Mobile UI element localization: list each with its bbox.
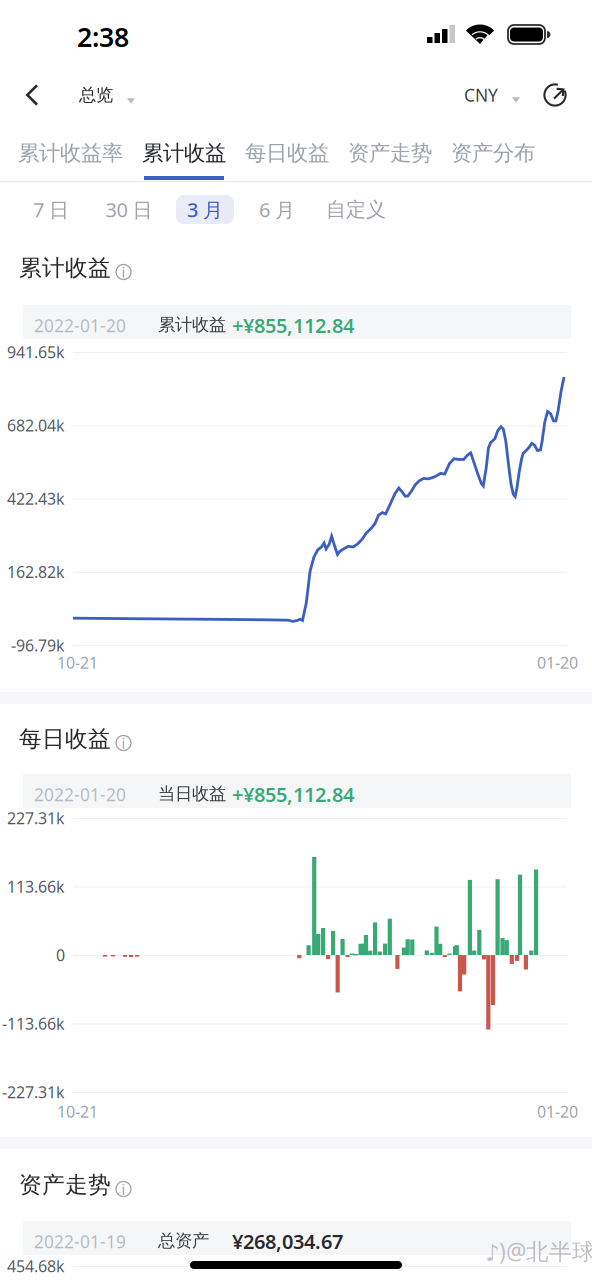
staticText: 资产分布 xyxy=(451,140,535,166)
staticText: 累计收益 xyxy=(158,314,226,335)
staticText: 2:38 xyxy=(77,19,129,54)
button[interactable]: 资产走势 xyxy=(350,123,430,181)
staticText: 每日收益 xyxy=(245,140,329,166)
button[interactable]: 资产分布 xyxy=(453,123,533,181)
button[interactable]: 每日收益 xyxy=(247,123,327,181)
staticText: -113.66k xyxy=(2,1013,65,1034)
staticText: i xyxy=(121,733,125,753)
staticText: ♪)@北半球 xyxy=(485,1236,592,1266)
staticText: 累计收益率 xyxy=(18,140,123,166)
staticText: ¥268,034.67 xyxy=(232,1228,343,1255)
staticText: 总资产 xyxy=(158,1230,209,1251)
staticText: 2022-01-20 xyxy=(34,314,126,337)
staticText: 资产走势 xyxy=(348,140,432,166)
button[interactable]: 30 日 xyxy=(95,195,163,224)
staticText: 10-21 xyxy=(57,1101,98,1122)
staticText: 30 日 xyxy=(105,196,152,223)
button[interactable]: 6 月 xyxy=(248,195,306,224)
staticText: 01-20 xyxy=(537,652,578,673)
staticText: 2022-01-19 xyxy=(34,1230,126,1253)
staticText: 资产走势 xyxy=(19,1171,111,1199)
button[interactable]: 累计收益率 xyxy=(20,123,121,181)
button[interactable]: 累计收益 xyxy=(144,123,224,181)
button[interactable]: 7 日 xyxy=(22,195,80,224)
button[interactable]: 总览 xyxy=(75,72,139,118)
staticText: CNY xyxy=(464,83,498,106)
staticText: +¥855,112.84 xyxy=(232,312,354,339)
staticText: 累计收益 xyxy=(142,140,226,166)
staticText: 01-20 xyxy=(537,1101,578,1122)
button[interactable]: Refresh xyxy=(532,72,580,118)
staticText: 当日收益 xyxy=(158,783,226,804)
button[interactable]: CNY xyxy=(460,73,524,117)
staticText: 227.31k xyxy=(7,807,65,829)
staticText: 682.04k xyxy=(7,415,65,436)
staticText: -227.31k xyxy=(2,1081,65,1103)
staticText: 每日收益 xyxy=(19,725,111,753)
staticText: 6 月 xyxy=(259,196,295,223)
staticText: 7 日 xyxy=(33,196,69,223)
staticText: -96.79k xyxy=(11,635,65,656)
staticText: 累计收益 xyxy=(19,254,111,282)
staticText: 自定义 xyxy=(326,197,386,222)
staticText: 422.43k xyxy=(7,488,65,509)
staticText: 10-21 xyxy=(57,652,98,673)
staticText: 3 月 xyxy=(187,196,223,223)
staticText: 总览 xyxy=(79,84,113,106)
staticText: 0 xyxy=(56,944,65,966)
button[interactable]: 3 月 xyxy=(176,195,234,224)
staticText: 454.68k xyxy=(7,1255,65,1277)
button[interactable]: 自定义 xyxy=(318,195,394,224)
staticText: +¥855,112.84 xyxy=(232,781,354,808)
button[interactable]: Back xyxy=(10,70,54,120)
staticText: i xyxy=(121,1179,125,1199)
staticText: 162.82k xyxy=(7,561,65,582)
staticText: 941.65k xyxy=(7,341,65,363)
staticText: 113.66k xyxy=(7,876,65,897)
staticText: 2022-01-20 xyxy=(34,783,126,806)
staticText: i xyxy=(121,262,125,282)
